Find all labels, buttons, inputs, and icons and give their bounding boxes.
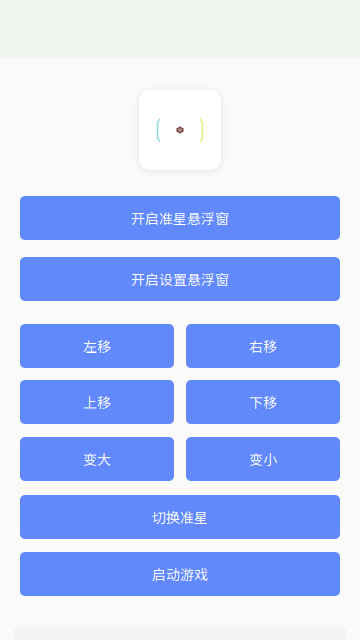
staticText: 上移 [83,392,111,412]
button[interactable]: 左移 [20,324,174,368]
button[interactable]: 变小 [186,437,340,481]
staticText: 切换准星 [152,507,208,527]
button[interactable]: 切换准星 [20,495,340,539]
button[interactable]: 变大 [20,437,174,481]
staticText: 下移 [249,392,277,412]
staticText: 左移 [83,336,111,356]
button[interactable]: 上移 [20,380,174,424]
staticText: 右移 [249,336,277,356]
staticText: 启动游戏 [152,564,208,584]
staticText: 开启设置悬浮窗 [131,269,229,289]
staticText: 变小 [249,449,277,469]
staticText: 变大 [83,449,111,469]
button[interactable]: 开启设置悬浮窗 [20,257,340,301]
button[interactable]: 启动游戏 [20,552,340,596]
staticText: 开启准星悬浮窗 [131,208,229,228]
button[interactable]: 右移 [186,324,340,368]
button[interactable]: 开启准星悬浮窗 [20,196,340,240]
button[interactable]: 下移 [186,380,340,424]
